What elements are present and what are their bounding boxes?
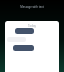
button[interactable] bbox=[13, 45, 34, 51]
button[interactable] bbox=[15, 28, 34, 34]
staticText: Message with text bbox=[0, 5, 64, 9]
staticText: Today bbox=[5, 24, 59, 28]
